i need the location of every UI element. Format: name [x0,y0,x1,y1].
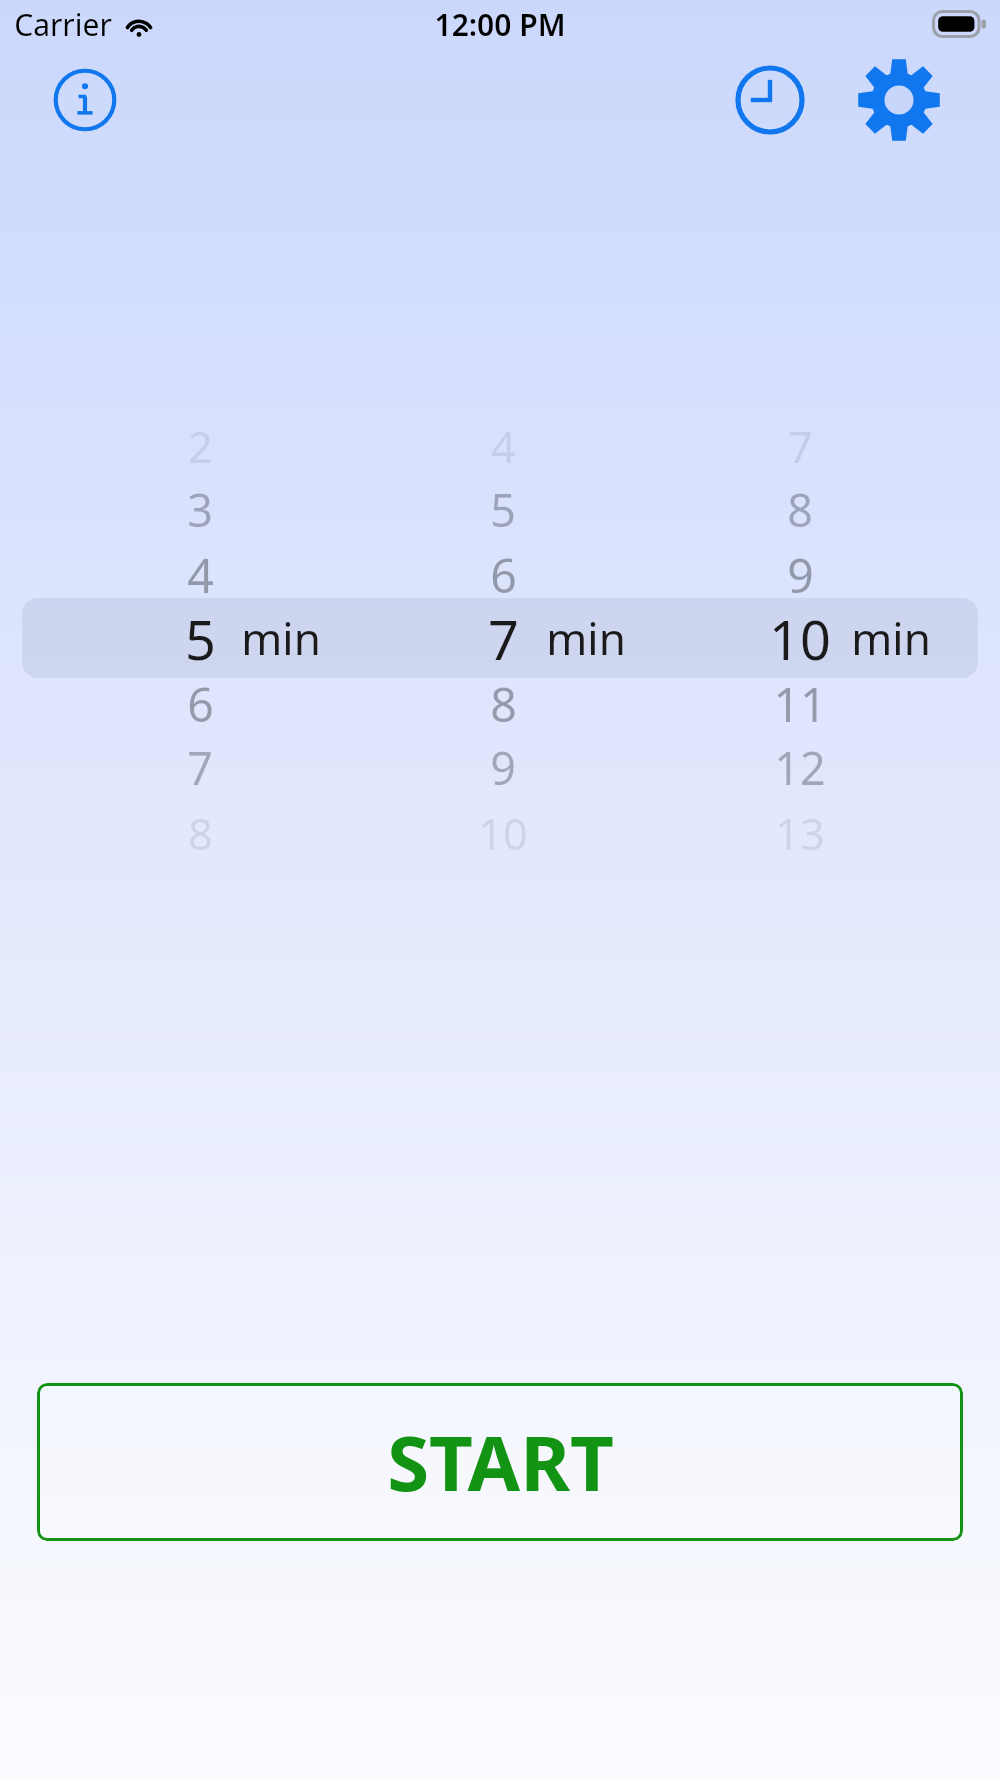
staticText: 8 [188,803,213,862]
button[interactable]: 8 [408,667,598,739]
button[interactable]: 5 [408,473,598,545]
button[interactable]: Information [47,62,123,138]
staticText: 12:00 PM [434,4,566,45]
staticText: 3 [187,479,213,540]
button[interactable]: 11 [705,667,895,739]
button[interactable]: START [37,1383,963,1541]
staticText: 9 [787,543,814,606]
button[interactable]: 9 [408,731,598,803]
button[interactable]: 6 [105,667,295,739]
button[interactable]: 10 [705,602,895,674]
button[interactable]: 7 [408,602,598,674]
staticText: 6 [490,543,517,606]
button[interactable]: 3 [105,473,295,545]
button[interactable]: 6 [408,538,598,610]
staticText: 5 [185,602,216,674]
button[interactable]: 5 [105,602,295,674]
staticText: 2 [188,416,213,475]
staticText: 7 [788,416,813,475]
staticText: 10 [769,602,831,674]
staticText: 6 [187,672,214,735]
staticText: 5 [490,479,516,540]
button[interactable]: 12 [705,731,895,803]
button[interactable]: 7 [105,731,295,803]
button[interactable]: 13 [705,796,895,868]
staticText: START [387,1410,614,1514]
staticText: 4 [491,416,516,475]
staticText: 4 [187,543,214,606]
button[interactable]: 10 [408,796,598,868]
staticText: 12 [774,737,826,798]
button[interactable]: 9 [705,538,895,610]
button[interactable]: Settings [855,56,943,144]
staticText: 10 [478,803,528,862]
staticText: min [241,608,321,668]
button[interactable]: 8 [705,473,895,545]
staticText: 13 [775,803,825,862]
staticText: 7 [187,737,213,798]
button[interactable]: History [730,60,810,140]
staticText: min [546,608,626,668]
staticText: 8 [490,672,517,735]
staticText: Carrier [14,4,112,45]
staticText: 7 [488,602,519,674]
staticText: min [851,608,931,668]
staticText: 8 [787,479,813,540]
staticText: 11 [773,672,827,735]
button[interactable]: 4 [105,538,295,610]
staticText: 9 [490,737,516,798]
